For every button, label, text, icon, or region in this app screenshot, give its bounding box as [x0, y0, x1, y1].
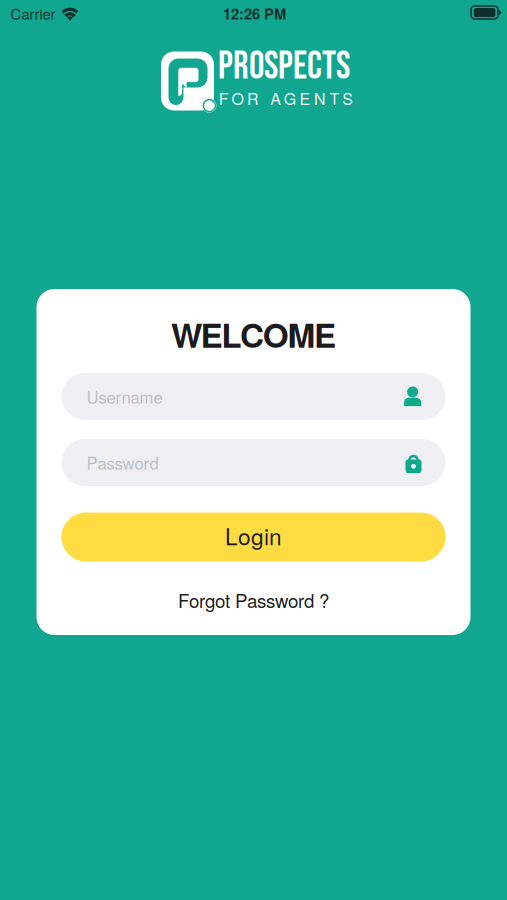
- staticText: 12:26 PM: [223, 3, 286, 24]
- button[interactable]: Username: [61, 373, 445, 420]
- staticText: Username: [86, 385, 162, 408]
- staticText: Password: [86, 451, 158, 474]
- staticText: FOR AGENTS: [219, 86, 353, 109]
- staticText: WELCOME: [171, 310, 336, 358]
- staticText: Carrier: [10, 3, 55, 24]
- staticText: PROSPECTS: [218, 44, 350, 90]
- staticText: Forgot Password ?: [178, 587, 329, 613]
- button[interactable]: Login: [61, 512, 445, 561]
- button[interactable]: Password: [61, 439, 445, 486]
- button[interactable]: Forgot Password ?: [153, 585, 353, 615]
- staticText: Login: [225, 519, 282, 552]
